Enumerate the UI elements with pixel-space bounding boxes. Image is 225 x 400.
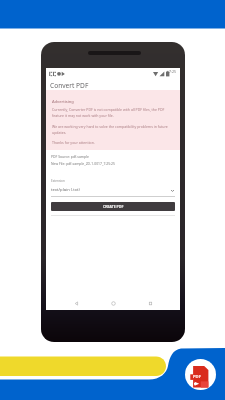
staticText: Currently, Converter PDF is not compatib… [52, 107, 175, 118]
staticText: text/plain (.txt) [51, 187, 80, 193]
button[interactable]: Back [69, 296, 83, 310]
staticText: Convert PDF [50, 81, 89, 90]
staticText: New File: pdf-sample_2D-1-0017_7:25:25 [51, 161, 115, 166]
staticText: CREATE PDF [103, 204, 124, 209]
staticText: Thanks for your attention. [52, 140, 95, 145]
staticText: 7:25 [169, 69, 177, 74]
staticText: We are working very hard to solve the co… [52, 124, 175, 135]
button[interactable]: Recent apps [143, 296, 157, 310]
staticText: PDF Source: pdf-sample [51, 154, 89, 159]
button[interactable]: CREATE PDF [51, 202, 175, 211]
staticText: Extension [51, 179, 65, 183]
button[interactable]: PDF converter [185, 359, 216, 390]
staticText: PDF [193, 374, 201, 380]
staticText: Advertising [52, 99, 74, 104]
button[interactable]: Home [106, 296, 120, 310]
button[interactable]: text/plain (.txt) [51, 187, 175, 193]
